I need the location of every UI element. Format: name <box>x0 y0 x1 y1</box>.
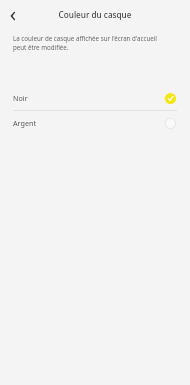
staticText: Noir <box>13 93 164 103</box>
button[interactable]: Argent <box>0 111 190 135</box>
button[interactable]: Back <box>2 5 24 27</box>
staticText: Argent <box>13 118 164 128</box>
staticText: Couleur du casque <box>0 9 190 20</box>
button[interactable]: Noir <box>0 86 190 110</box>
staticText: La couleur de casque affichée sur l'écra… <box>13 34 181 52</box>
